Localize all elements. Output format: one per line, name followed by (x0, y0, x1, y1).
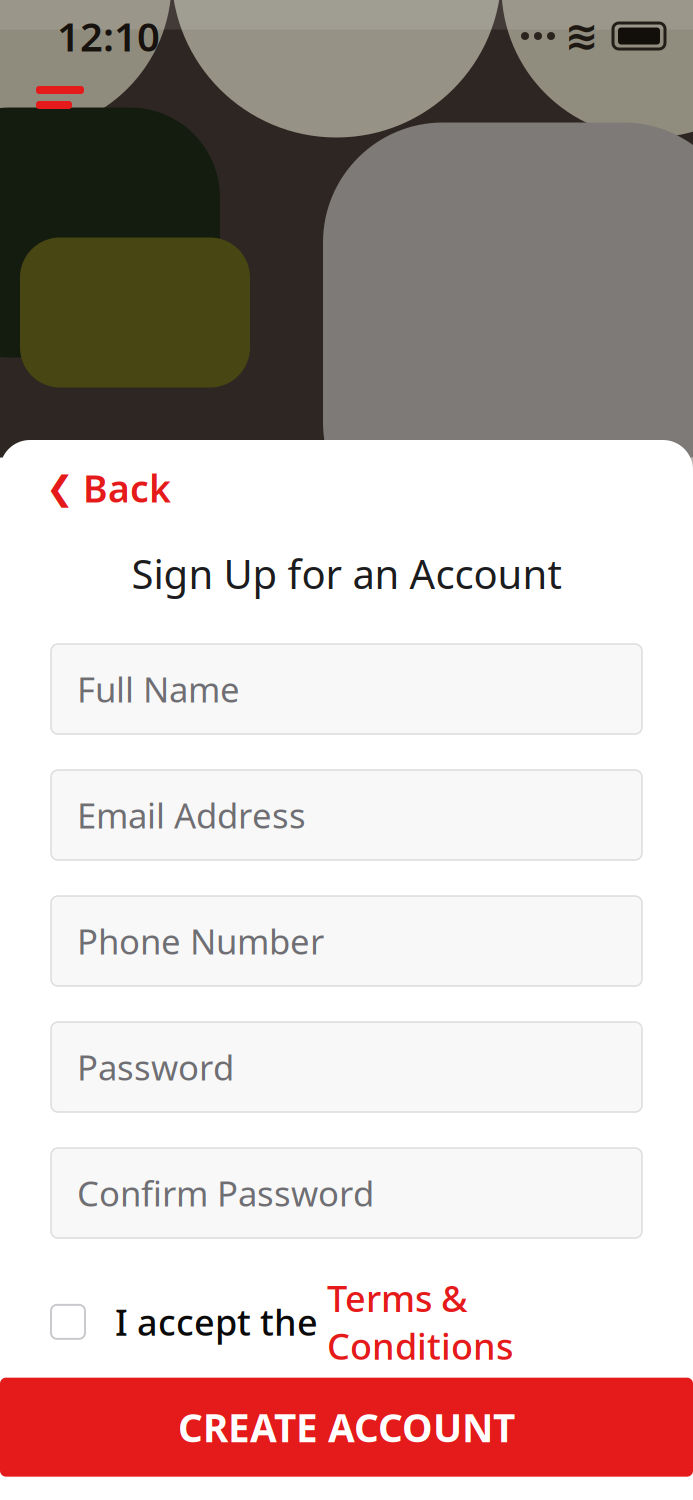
staticText: Password (77, 1044, 234, 1090)
staticText: Sign Up for an Account (131, 547, 561, 600)
staticText: Full Name (77, 666, 240, 712)
staticText: 12:10 (57, 9, 160, 62)
staticText: Confirm Password (77, 1170, 374, 1216)
button[interactable]: Confirm Password (51, 1148, 642, 1238)
button[interactable]: Accept terms and conditions (51, 1305, 85, 1339)
button[interactable]: Menu (0, 72, 120, 123)
staticText: ❮ (46, 469, 74, 507)
staticText: Email Address (77, 792, 306, 838)
staticText: Phone Number (77, 918, 324, 964)
button[interactable]: ❮ (0, 453, 195, 523)
button[interactable]: Terms & Conditions (327, 1274, 513, 1370)
staticText: ≋ (565, 13, 599, 59)
button[interactable]: Email Address (51, 770, 642, 860)
button[interactable]: Password (51, 1022, 642, 1112)
button[interactable]: Phone Number (51, 896, 642, 986)
staticText: Terms & Conditions (327, 1274, 513, 1370)
button[interactable]: CREATE ACCOUNT (0, 1378, 693, 1477)
staticText: I accept the (115, 1298, 327, 1346)
staticText: CREATE ACCOUNT (178, 1401, 515, 1453)
staticText: Back (83, 463, 171, 513)
button[interactable]: Full Name (51, 644, 642, 734)
